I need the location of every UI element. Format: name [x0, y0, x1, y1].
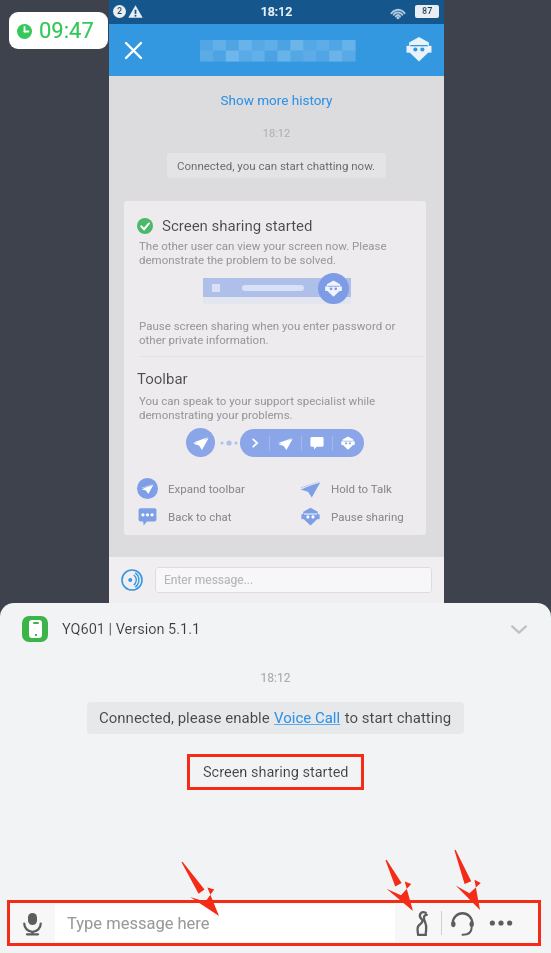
button[interactable]: Pause sharing [300, 506, 426, 527]
button[interactable]: More options [482, 904, 520, 942]
staticText: Hold to Talk [331, 482, 392, 495]
staticText: Connected, please enable [99, 709, 274, 727]
staticText: Expand toolbar [168, 482, 245, 495]
button[interactable]: Type message here [55, 904, 395, 942]
staticText: Connected, you can start chatting now. [177, 159, 376, 172]
staticText: 09:47 [39, 18, 94, 44]
button[interactable]: Expand toolbar [137, 478, 300, 499]
staticText: 18:12 [0, 671, 551, 685]
button[interactable]: Voice input [13, 904, 51, 942]
staticText: Enter message... [164, 573, 254, 587]
staticText: Screen sharing started [203, 764, 349, 781]
staticText: Type message here [67, 914, 210, 933]
button[interactable]: Connected, please enable [87, 702, 464, 734]
staticText: to start chatting [341, 709, 452, 727]
button[interactable]: Hold to Talk [300, 478, 426, 499]
staticText: 2 [117, 6, 123, 17]
staticText: Pause sharing [331, 510, 404, 523]
staticText: The other user can view your screen now.… [139, 239, 387, 267]
button[interactable]: Show more history [109, 92, 444, 108]
button[interactable]: Close [115, 32, 151, 68]
staticText: Voice Call [274, 709, 341, 727]
button[interactable]: Support call [442, 903, 482, 943]
staticText: Screen sharing started [162, 217, 313, 235]
staticText: Pause screen sharing when you enter pass… [139, 319, 396, 347]
staticText: 18:12 [109, 4, 444, 19]
staticText: 87 [422, 6, 433, 17]
button[interactable]: 09:47 [9, 12, 108, 49]
staticText: 18:12 [109, 127, 444, 140]
staticText: Toolbar [137, 370, 188, 388]
button[interactable]: Gesture [403, 904, 441, 942]
button[interactable]: Back to chat [137, 506, 300, 527]
button[interactable]: Screen sharing started [187, 754, 364, 790]
staticText: Back to chat [168, 510, 232, 523]
button[interactable]: Collapse [505, 615, 533, 643]
button[interactable]: YQ601 | Version 5.1.1 [0, 603, 551, 655]
staticText: YQ601 | Version 5.1.1 [62, 621, 201, 638]
staticText: You can speak to your support specialist… [139, 394, 376, 422]
